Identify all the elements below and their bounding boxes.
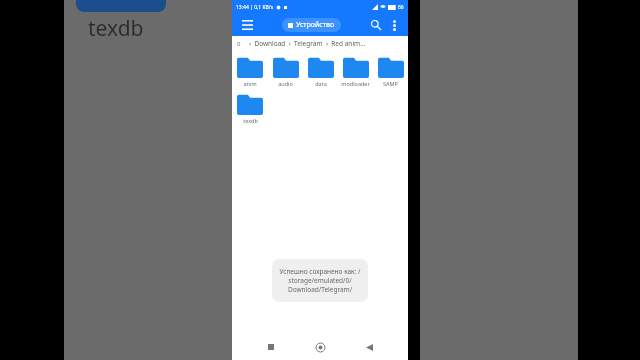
staticText: audio xyxy=(278,80,293,87)
button[interactable]: data xyxy=(303,53,338,90)
button[interactable]: anim xyxy=(232,53,268,90)
button[interactable]: Home xyxy=(310,337,330,357)
button[interactable]: More options xyxy=(387,18,401,32)
staticText: Успешно сохранено как: /storage/emulated… xyxy=(278,267,362,294)
button[interactable]: Устройство xyxy=(282,18,341,32)
button[interactable]: Search xyxy=(368,17,384,33)
staticText: texdb xyxy=(243,117,258,124)
staticText: 66 xyxy=(398,4,404,11)
staticText: texdb xyxy=(88,14,144,43)
staticText: › Download › Telegram › Red anim… xyxy=(249,39,366,48)
button[interactable]: Menu xyxy=(239,17,255,33)
button[interactable]: audio xyxy=(268,53,303,90)
button[interactable]: Recents xyxy=(261,337,281,357)
button[interactable]: texdb xyxy=(232,90,268,127)
staticText: 0 xyxy=(237,40,241,48)
staticText: anim xyxy=(243,80,257,87)
staticText: 13:44 | 0,1 KB/s xyxy=(236,4,274,11)
button[interactable]: Back xyxy=(359,337,379,357)
staticText: Устройство xyxy=(296,20,335,30)
staticText: SAMP xyxy=(383,80,398,87)
staticText: data xyxy=(315,80,327,87)
staticText: modloader xyxy=(341,80,370,87)
button[interactable]: modloader xyxy=(338,53,373,90)
button[interactable]: SAMP xyxy=(373,53,408,90)
